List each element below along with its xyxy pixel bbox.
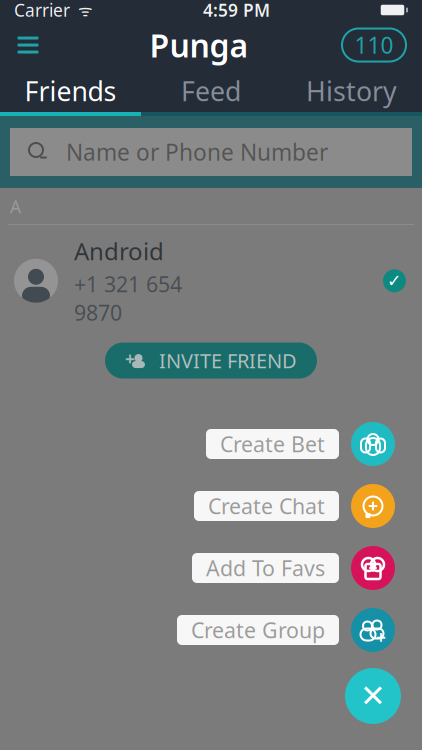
button[interactable]: Add To Favs [351,546,395,590]
staticText: ᯤ [70,0,93,21]
staticText: + [376,625,386,648]
staticText: Name or Phone Number [66,137,328,167]
button[interactable]: History [281,70,422,112]
button[interactable]: Feed [141,70,281,112]
staticText: + [125,347,135,370]
button[interactable]: Create Chat [194,491,339,521]
staticText: Create Group [191,616,325,644]
staticText: 4:59 PM [203,0,270,21]
staticText: A [10,195,21,218]
staticText: ✓ [387,271,402,291]
staticText: +1 321 654 9870 [74,270,182,327]
button[interactable]: Create Group [351,608,395,652]
staticText: ✕ [360,679,386,713]
button[interactable]: Android [0,225,422,336]
button[interactable]: Close menu [345,668,401,724]
button[interactable]: Menu [0,21,56,69]
staticText: Feed [181,73,241,109]
staticText: Create Bet [220,430,325,458]
button[interactable]: Create Group [177,615,339,645]
button[interactable]: + [105,342,317,378]
staticText: Add To Favs [206,554,325,582]
button[interactable]: Create Bet [351,422,395,466]
staticText: History [306,73,397,109]
button[interactable]: Create Bet [206,429,339,459]
staticText: Punga [149,24,248,66]
staticText: 110 [354,30,393,60]
staticText: INVITE FRIEND [159,347,297,374]
button[interactable]: Add To Favs [192,553,339,583]
button[interactable]: Create Chat [351,484,395,528]
staticText: Friends [24,73,116,109]
button[interactable]: 110 [342,28,406,61]
staticText: Carrier [14,0,70,21]
staticText: Android [74,235,164,267]
staticText: Create Chat [208,492,325,520]
button[interactable]: Friends [0,70,141,112]
